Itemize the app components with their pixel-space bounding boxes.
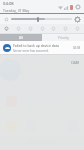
button[interactable]: Location bbox=[26, 24, 35, 33]
button[interactable]: Clear all notifications bbox=[71, 61, 79, 65]
button[interactable]: Rotate bbox=[49, 24, 58, 33]
staticText: Server error has occurred. bbox=[13, 49, 49, 53]
button[interactable]: Settings bbox=[75, 4, 81, 10]
staticText: All bbox=[19, 36, 23, 40]
button[interactable]: Bluetooth bbox=[38, 24, 47, 33]
staticText: 04:08 bbox=[73, 46, 81, 50]
button[interactable]: Sound bbox=[14, 24, 23, 33]
button[interactable]: Brightness bbox=[3, 16, 9, 22]
button[interactable]: Priority bbox=[42, 34, 84, 41]
button[interactable]: All bbox=[0, 34, 42, 41]
button[interactable]: Wi-Fi bbox=[2, 24, 11, 33]
staticText: CLEAR bbox=[71, 61, 79, 65]
staticText: Tuesday, 31 May bbox=[3, 8, 30, 13]
button[interactable] bbox=[11, 16, 72, 22]
button[interactable]: Failed to back up device data bbox=[3, 41, 81, 54]
button[interactable]: Auto brightness settings bbox=[74, 16, 81, 23]
staticText: 04:08 bbox=[3, 1, 14, 7]
staticText: Priority bbox=[58, 36, 69, 40]
button[interactable]: Flashlight bbox=[61, 24, 70, 33]
button[interactable]: More bbox=[73, 24, 82, 33]
staticText: Failed to back up device data bbox=[13, 43, 59, 48]
